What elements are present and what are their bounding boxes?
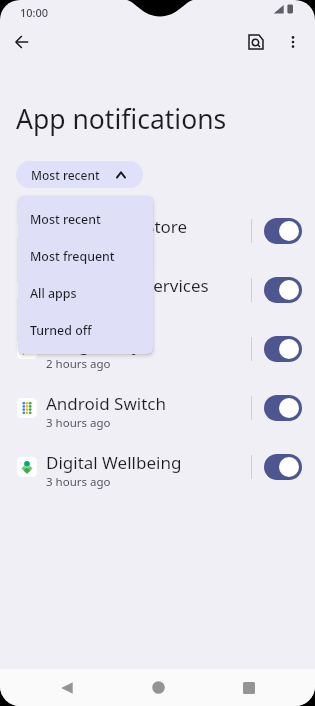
staticText: Most frequent — [30, 248, 115, 265]
button[interactable]: Toggle notifications — [264, 218, 302, 244]
staticText: Turned off — [30, 322, 92, 339]
button[interactable]: Most frequent — [18, 238, 153, 275]
staticText: 3 hours ago — [46, 415, 111, 431]
staticText: Digital Wellbeing — [46, 451, 182, 474]
button[interactable]: Most recent — [18, 201, 153, 238]
staticText: 1 hour ago — [46, 238, 105, 254]
button[interactable]: Turned off — [18, 312, 153, 349]
button[interactable]: Search — [242, 28, 270, 56]
button[interactable]: All apps — [18, 275, 153, 312]
button[interactable]: Toggle notifications — [264, 395, 302, 421]
staticText: 2 hours ago — [46, 356, 111, 372]
staticText: Google Play services — [46, 274, 209, 297]
button[interactable]: Back — [8, 28, 36, 56]
button[interactable]: Digital Wellbeing — [0, 437, 315, 496]
button[interactable]: Toggle notifications — [264, 336, 302, 362]
staticText: Most recent — [31, 167, 100, 183]
button[interactable]: Android Switch — [0, 378, 315, 437]
staticText: 10:00 — [20, 5, 49, 20]
button[interactable]: Google Play Store — [0, 201, 315, 260]
staticText: 3 hours ago — [46, 474, 111, 490]
button[interactable]: Google Play — [0, 319, 315, 378]
staticText: 2 hours ago — [46, 297, 111, 313]
staticText: Android Switch — [46, 392, 166, 415]
button[interactable]: More options — [279, 28, 307, 56]
button[interactable]: Toggle notifications — [264, 277, 302, 303]
staticText: Google Play — [46, 333, 141, 356]
button[interactable]: Home — [142, 671, 175, 704]
staticText: App notifications — [16, 101, 227, 137]
staticText: All apps — [30, 285, 77, 302]
button[interactable]: Most recent — [16, 161, 143, 188]
button[interactable]: Recents — [232, 671, 265, 704]
staticText: Google Play Store — [46, 215, 188, 238]
staticText: Most recent — [30, 211, 101, 228]
button[interactable]: Google Play services — [0, 260, 315, 319]
button[interactable]: Toggle notifications — [264, 454, 302, 480]
button[interactable]: Back — [50, 671, 83, 704]
